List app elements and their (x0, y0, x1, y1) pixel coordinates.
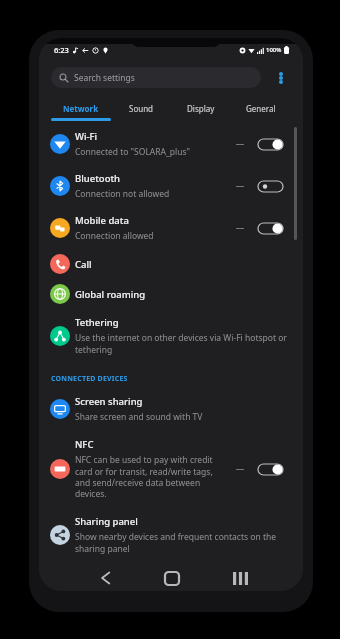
button[interactable]: Wi-Fi (39, 123, 303, 165)
staticText: Call (75, 258, 92, 271)
button[interactable]: Back (92, 565, 118, 591)
staticText: Share screen and sound with TV (75, 411, 203, 423)
button[interactable]: Search settings (51, 67, 261, 88)
staticText: Mobile data (75, 214, 129, 227)
staticText: Search settings (74, 72, 135, 84)
button[interactable]: Toggle on (258, 464, 283, 475)
button[interactable]: Display (171, 102, 231, 122)
button[interactable]: Network (51, 102, 111, 122)
staticText: 6:23 (54, 45, 69, 55)
staticText: CONNECTED DEVICES (51, 374, 128, 384)
staticText: General (246, 103, 276, 114)
button[interactable]: NFC (39, 430, 303, 508)
staticText: NFC (75, 438, 94, 451)
staticText: Connected to "SOLARA_plus" (75, 146, 190, 158)
staticText: Use the internet on other devices via Wi… (75, 332, 288, 356)
button[interactable]: Global roaming (39, 279, 303, 309)
button[interactable]: General (231, 102, 291, 122)
button[interactable]: Sharing panel (39, 508, 303, 562)
staticText: Tethering (75, 316, 119, 329)
staticText: Sharing panel (75, 515, 138, 528)
staticText: 100% (266, 46, 282, 54)
button[interactable]: Bluetooth (39, 165, 303, 207)
button[interactable]: More options (270, 67, 291, 88)
staticText: Screen sharing (75, 395, 143, 408)
staticText: NFC can be used to pay with credit card … (75, 454, 223, 500)
staticText: Display (187, 103, 215, 114)
button[interactable]: Home (159, 565, 185, 591)
staticText: Show nearby devices and frequent contact… (75, 531, 288, 555)
button[interactable]: Screen sharing (39, 388, 303, 430)
button[interactable]: Recents (227, 565, 253, 591)
staticText: Wi-Fi (75, 130, 98, 143)
staticText: Sound (129, 103, 154, 114)
staticText: Connection allowed (75, 230, 154, 242)
button[interactable]: Tethering (39, 309, 303, 363)
staticText: Network (63, 103, 99, 114)
button[interactable]: Sound (111, 102, 171, 122)
staticText: Bluetooth (75, 172, 121, 185)
button[interactable]: Mobile data (39, 207, 303, 249)
staticText: Connection not allowed (75, 188, 170, 200)
button[interactable]: Toggle off (258, 181, 283, 192)
button[interactable]: Toggle on (258, 223, 283, 234)
button[interactable]: Call (39, 249, 303, 279)
button[interactable]: Toggle on (258, 139, 283, 150)
staticText: Global roaming (75, 288, 146, 301)
